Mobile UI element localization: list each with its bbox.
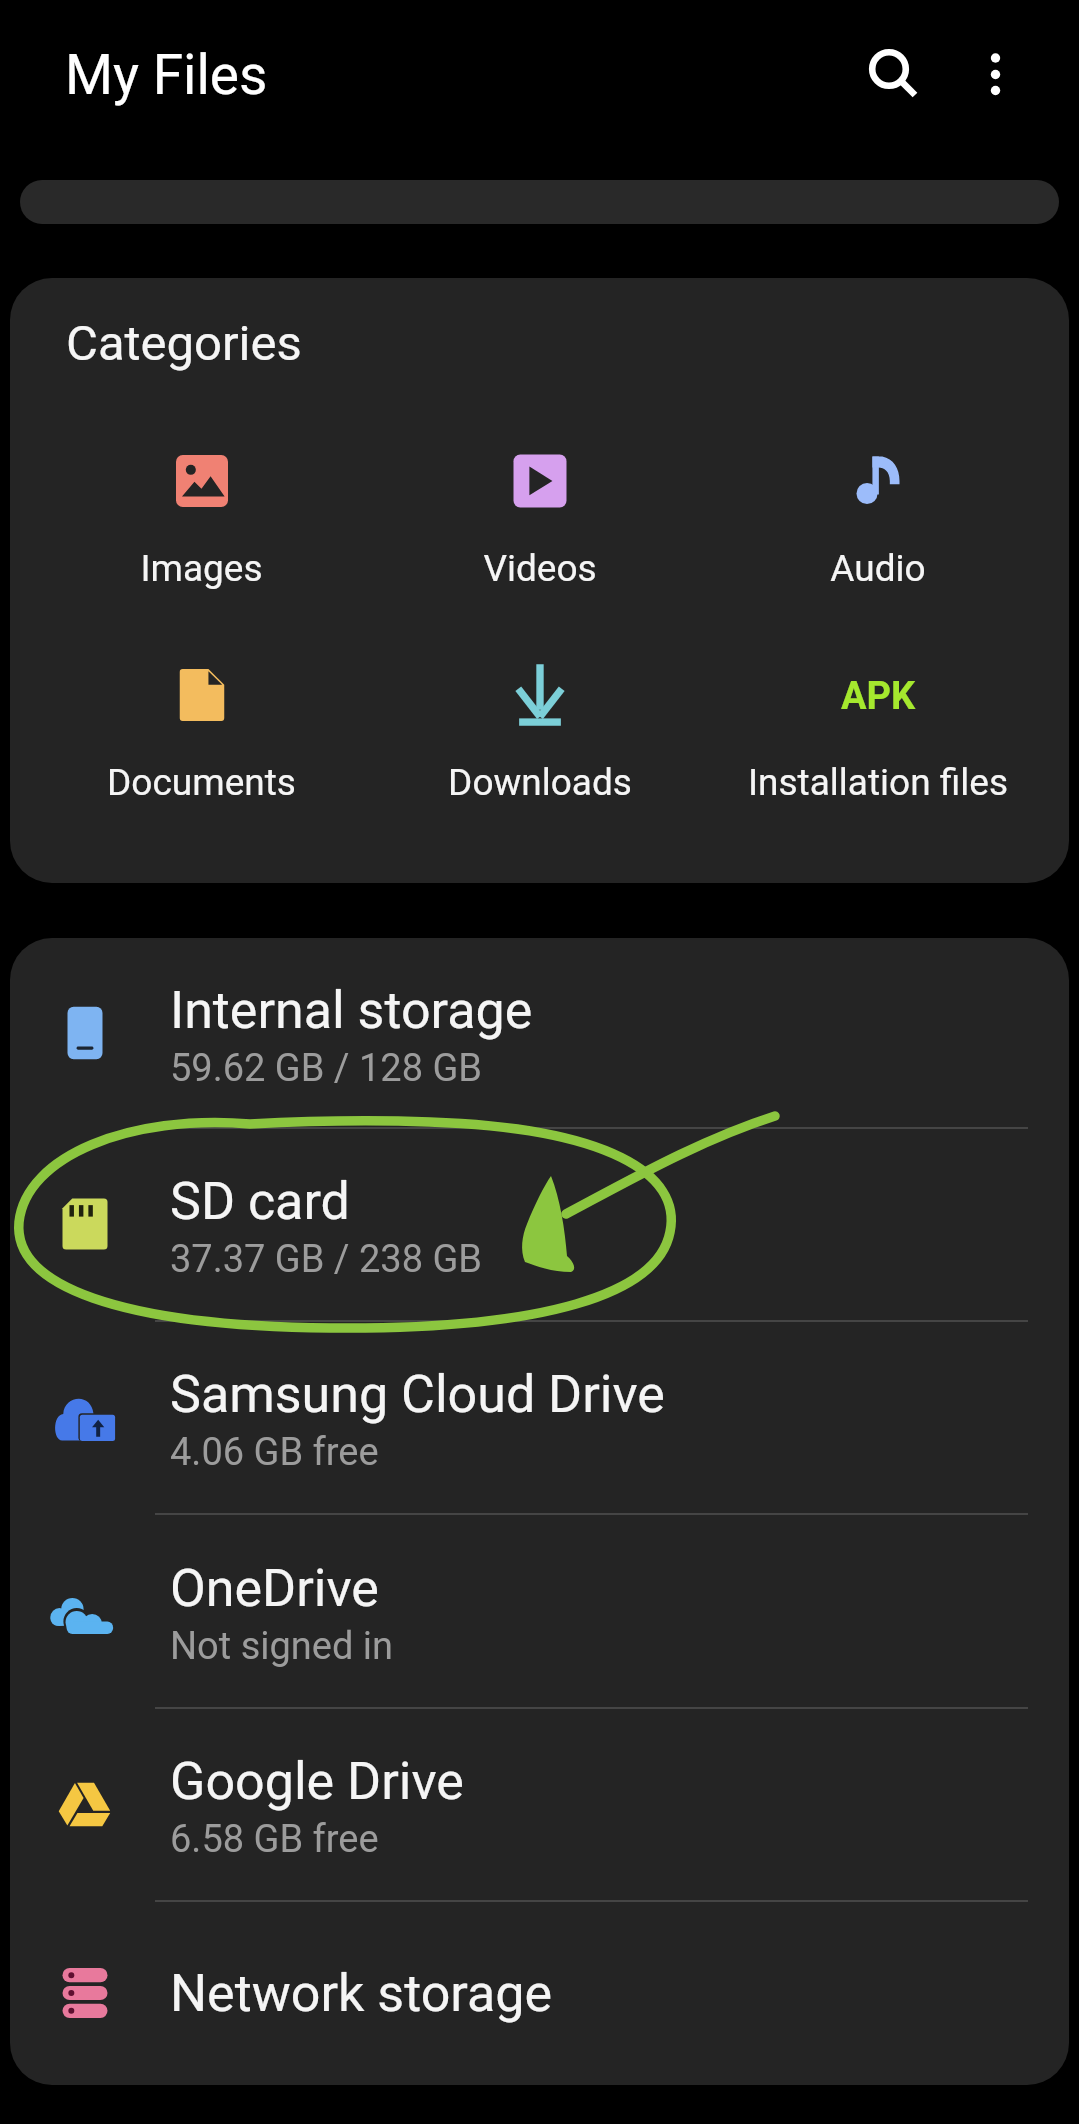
staticText: 6.58 GB free — [170, 1817, 379, 1862]
staticText: Videos — [483, 547, 597, 590]
button[interactable]: Internal storage — [10, 938, 1069, 1127]
button[interactable]: Google Drive — [10, 1708, 1069, 1900]
staticText: Audio — [830, 547, 926, 590]
staticText: Google Drive — [170, 1751, 464, 1812]
button[interactable]: Search files — [20, 180, 1059, 224]
button[interactable]: Samsung Cloud Drive — [10, 1321, 1069, 1513]
button[interactable]: Audio — [709, 449, 1047, 590]
staticText: Downloads — [448, 761, 632, 804]
button[interactable]: OneDrive — [10, 1514, 1069, 1707]
button[interactable]: APK — [709, 663, 1047, 804]
staticText: Categories — [66, 315, 302, 372]
button[interactable]: More options — [947, 26, 1043, 122]
staticText: Network storage — [170, 1963, 552, 2024]
staticText: 4.06 GB free — [170, 1430, 379, 1475]
staticText: 37.37 GB / 238 GB — [170, 1237, 483, 1282]
staticText: Samsung Cloud Drive — [170, 1364, 665, 1425]
staticText: Documents — [107, 761, 296, 804]
button[interactable]: Search — [841, 21, 937, 117]
staticText: Internal storage — [170, 980, 533, 1041]
button[interactable]: SD card — [10, 1128, 1069, 1320]
staticText: 59.62 GB / 128 GB — [170, 1046, 483, 1091]
staticText: APK — [841, 674, 916, 719]
staticText: Not signed in — [170, 1624, 394, 1669]
staticText: My Files — [65, 43, 268, 107]
staticText: SD card — [170, 1171, 350, 1232]
staticText: OneDrive — [170, 1558, 379, 1619]
button[interactable]: Network storage — [10, 1901, 1069, 2085]
button[interactable]: Documents — [32, 663, 371, 804]
staticText: Installation files — [748, 761, 1008, 804]
button[interactable]: Images — [32, 449, 371, 590]
button[interactable]: Videos — [371, 449, 709, 590]
button[interactable]: Downloads — [371, 663, 709, 804]
staticText: Images — [140, 547, 263, 590]
